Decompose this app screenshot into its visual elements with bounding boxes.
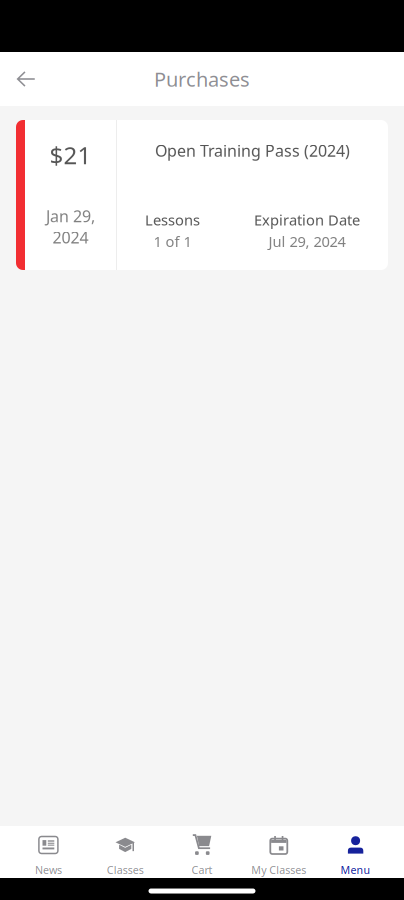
staticText: Purchases [154, 66, 250, 92]
staticText: My Classes [251, 863, 306, 877]
button[interactable]: $21 [16, 120, 388, 270]
staticText: Jul 29, 2024 [268, 231, 345, 251]
button[interactable]: Cart [164, 826, 240, 878]
button[interactable]: Menu [317, 826, 394, 878]
staticText: 1 of 1 [153, 231, 191, 251]
button[interactable]: News [10, 826, 87, 878]
button[interactable]: My Classes [240, 826, 317, 878]
staticText: Classes [107, 863, 144, 877]
staticText: Menu [341, 863, 371, 877]
staticText: News [35, 863, 62, 877]
staticText: Open Training Pass (2024) [155, 140, 350, 161]
button[interactable]: Classes [87, 826, 164, 878]
staticText: Cart [191, 863, 212, 877]
button[interactable]: Back [0, 52, 52, 106]
staticText: Lessons [145, 210, 200, 229]
staticText: 2024 [52, 227, 88, 248]
staticText: $21 [49, 139, 91, 171]
staticText: Jan 29, [46, 205, 95, 227]
staticText: Expiration Date [254, 210, 360, 229]
